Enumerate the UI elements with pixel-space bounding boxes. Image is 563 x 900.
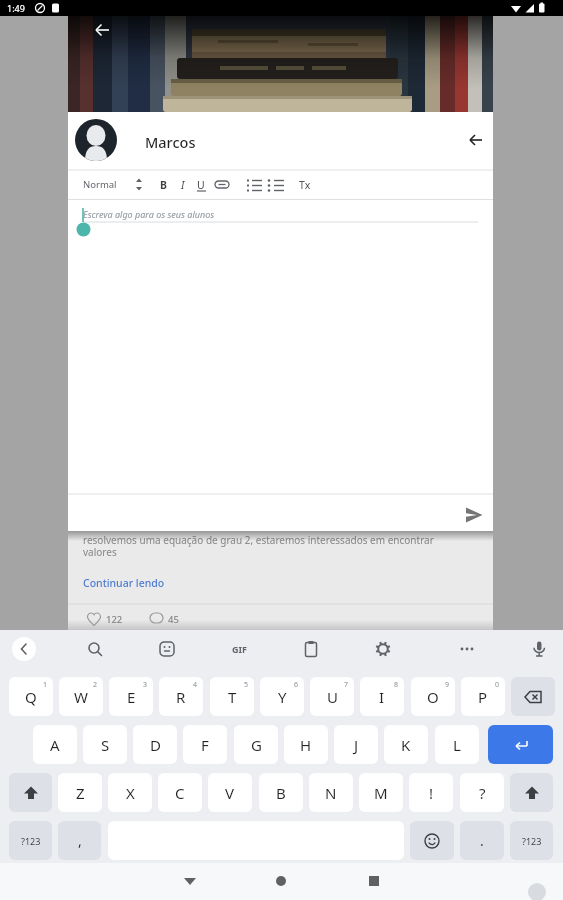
- staticText: 5: [244, 680, 249, 690]
- button[interactable]: .: [460, 821, 504, 860]
- staticText: 45: [168, 613, 179, 626]
- button[interactable]: GIF: [227, 637, 251, 661]
- staticText: 6: [294, 680, 299, 690]
- button[interactable]: X: [108, 773, 152, 812]
- staticText: I: [379, 687, 385, 707]
- button[interactable]: [510, 773, 553, 812]
- staticText: B: [276, 783, 286, 803]
- button[interactable]: [91, 18, 115, 42]
- button[interactable]: [9, 773, 52, 812]
- staticText: 8: [394, 680, 399, 690]
- staticText: resolvemos uma equação de grau 2, estare…: [83, 533, 434, 547]
- button[interactable]: [488, 725, 553, 764]
- staticText: R: [176, 687, 186, 707]
- staticText: P: [478, 687, 488, 707]
- staticText: A: [50, 735, 60, 755]
- staticText: 7: [344, 680, 349, 690]
- staticText: Y: [278, 687, 287, 707]
- staticText: I: [181, 178, 185, 192]
- staticText: U: [327, 687, 338, 707]
- staticText: B: [160, 178, 167, 192]
- button[interactable]: F: [183, 725, 227, 764]
- button[interactable]: H: [284, 725, 328, 764]
- button[interactable]: W: [59, 677, 103, 716]
- button[interactable]: ?123: [510, 821, 553, 860]
- button[interactable]: T: [210, 677, 254, 716]
- staticText: .: [480, 831, 484, 850]
- button[interactable]: [362, 869, 386, 893]
- staticText: U: [197, 178, 205, 192]
- button[interactable]: D: [133, 725, 177, 764]
- staticText: ,: [78, 831, 82, 850]
- staticText: 122: [106, 613, 123, 626]
- button[interactable]: [410, 821, 454, 860]
- staticText: H: [300, 735, 312, 755]
- button[interactable]: B: [259, 773, 303, 812]
- button[interactable]: Q: [9, 677, 53, 716]
- staticText: ?: [479, 783, 486, 803]
- button[interactable]: ?123: [9, 821, 52, 860]
- button[interactable]: Z: [58, 773, 102, 812]
- staticText: L: [453, 735, 461, 755]
- button[interactable]: Continuar lendo: [83, 576, 165, 590]
- staticText: 2: [93, 680, 98, 690]
- staticText: Continuar lendo: [83, 576, 165, 590]
- button[interactable]: !: [409, 773, 453, 812]
- staticText: valores: [83, 545, 117, 559]
- staticText: 4: [193, 680, 198, 690]
- staticText: X: [126, 783, 135, 803]
- button[interactable]: V: [208, 773, 252, 812]
- staticText: N: [325, 783, 337, 803]
- button[interactable]: Y: [260, 677, 304, 716]
- button[interactable]: [462, 503, 486, 527]
- button[interactable]: [178, 869, 202, 893]
- button[interactable]: ?: [460, 773, 504, 812]
- button[interactable]: K: [384, 725, 428, 764]
- staticText: ?123: [522, 835, 542, 847]
- button[interactable]: Normal: [78, 170, 130, 199]
- button[interactable]: [83, 637, 107, 661]
- staticText: T: [228, 687, 237, 707]
- button[interactable]: E: [109, 677, 153, 716]
- button[interactable]: [155, 637, 179, 661]
- button[interactable]: ,: [58, 821, 101, 860]
- staticText: Tx: [299, 178, 311, 192]
- staticText: 3: [143, 680, 148, 690]
- button[interactable]: I: [360, 677, 404, 716]
- staticText: J: [354, 735, 359, 755]
- button[interactable]: R: [159, 677, 203, 716]
- button[interactable]: U: [310, 677, 354, 716]
- button[interactable]: L: [435, 725, 479, 764]
- staticText: O: [427, 687, 439, 707]
- button[interactable]: G: [234, 725, 278, 764]
- button[interactable]: J: [334, 725, 378, 764]
- button[interactable]: O: [411, 677, 455, 716]
- staticText: Q: [25, 687, 37, 707]
- staticText: Normal: [83, 178, 117, 191]
- staticText: W: [74, 687, 88, 707]
- button[interactable]: M: [359, 773, 403, 812]
- button[interactable]: S: [83, 725, 127, 764]
- staticText: M: [374, 783, 388, 803]
- button[interactable]: [12, 637, 36, 661]
- button[interactable]: N: [309, 773, 353, 812]
- staticText: G: [251, 735, 262, 755]
- staticText: ?123: [21, 835, 41, 847]
- staticText: 1: [43, 680, 48, 690]
- button[interactable]: A: [33, 725, 77, 764]
- button[interactable]: [371, 637, 395, 661]
- button[interactable]: C: [158, 773, 202, 812]
- button[interactable]: [464, 128, 488, 152]
- staticText: D: [150, 735, 161, 755]
- button[interactable]: [299, 637, 323, 661]
- staticText: GIF: [232, 643, 247, 655]
- button[interactable]: [527, 637, 551, 661]
- button[interactable]: [269, 869, 293, 893]
- button[interactable]: [455, 637, 479, 661]
- staticText: Marcos: [145, 132, 196, 152]
- button[interactable]: [511, 677, 555, 716]
- button[interactable]: P: [461, 677, 505, 716]
- staticText: C: [175, 783, 185, 803]
- staticText: !: [429, 783, 434, 803]
